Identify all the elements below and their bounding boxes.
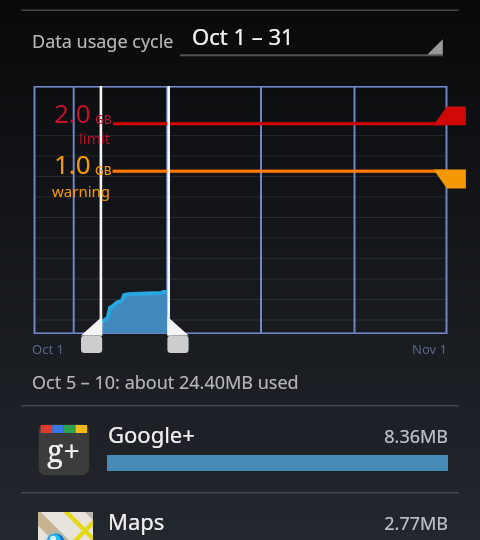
staticText: warning [52,181,111,201]
staticText: Data usage cycle [32,29,174,54]
staticText: GB [95,162,112,178]
staticText: limit [79,128,111,148]
staticText: Oct 5 – 10: about 24.40MB used [32,370,299,395]
staticText: Oct 1 – 31 [192,21,294,51]
staticText: 2.77MB [248,511,448,536]
staticText: g+ [47,430,80,471]
staticText: 8.36MB [248,424,448,449]
button[interactable]: Oct 1 – 31 [180,18,443,56]
button[interactable]: Maps [0,493,480,540]
staticText: Google+ [108,419,195,449]
staticText: Oct 1 [32,340,64,358]
staticText: Nov 1 [412,340,447,358]
staticText: 1.0 [54,146,91,181]
staticText: 2.0 [54,95,91,130]
button[interactable]: g+ [0,406,480,492]
staticText: Maps [108,506,165,536]
staticText: GB [95,111,112,127]
